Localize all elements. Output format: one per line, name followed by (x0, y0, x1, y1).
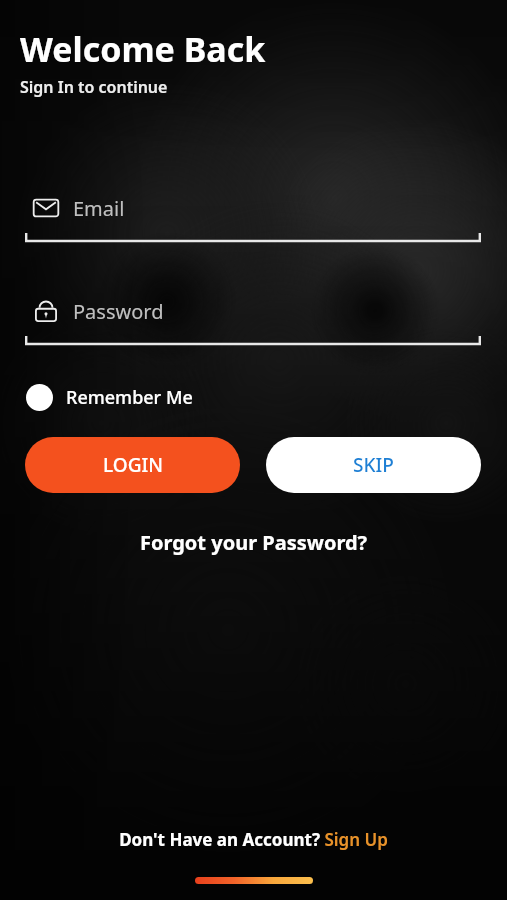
staticText: Sign In to continue (20, 76, 168, 98)
staticText: Don't Have an Account? Sign Up (119, 828, 388, 851)
button[interactable]: LOGIN (25, 437, 240, 493)
staticText: SKIP (353, 452, 394, 478)
button[interactable]: Remember Me (20, 380, 199, 415)
button[interactable]: Forgot your Password? (130, 525, 378, 560)
staticText: Remember Me (66, 385, 193, 410)
staticText: Forgot your Password? (140, 529, 368, 556)
staticText: Welcome Back (20, 26, 266, 72)
staticText: LOGIN (103, 452, 163, 478)
staticText: Email (73, 195, 125, 222)
button[interactable]: Email (0, 194, 507, 244)
button[interactable]: Password (0, 297, 507, 347)
button[interactable]: Don't Have an Account? Sign Up (109, 824, 398, 855)
button[interactable]: SKIP (266, 437, 481, 493)
staticText: Password (73, 298, 164, 325)
